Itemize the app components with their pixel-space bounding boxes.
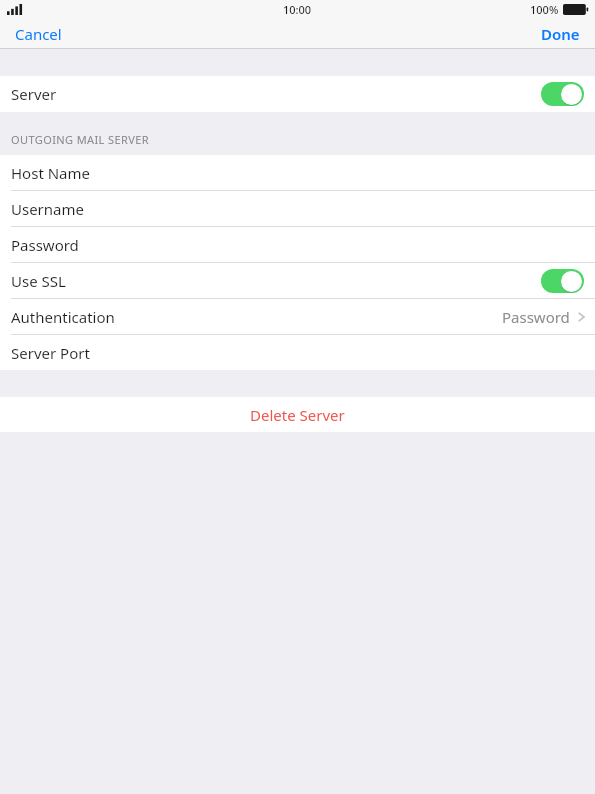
button[interactable]: Password	[0, 227, 595, 262]
staticText: 100%	[530, 2, 559, 17]
button[interactable]: Cancel	[0, 20, 74, 48]
staticText: Password	[502, 307, 570, 327]
button[interactable]: Host Name	[0, 155, 595, 190]
button[interactable]: Delete Server	[0, 397, 595, 432]
staticText: Authentication	[11, 307, 115, 327]
button[interactable]: Done	[529, 20, 595, 48]
button[interactable]: Username	[0, 191, 595, 226]
button[interactable]: Use SSL	[0, 263, 595, 298]
staticText: Use SSL	[11, 271, 66, 291]
staticText: Server Port	[11, 343, 90, 363]
staticText: Done	[541, 24, 580, 44]
staticText: Host Name	[11, 163, 90, 183]
staticText: Server	[11, 84, 57, 104]
staticText: Delete Server	[250, 405, 345, 425]
button[interactable]: Authentication	[0, 299, 595, 334]
staticText: Password	[11, 235, 79, 255]
button[interactable]: Server	[0, 76, 595, 112]
staticText: Username	[11, 199, 84, 219]
staticText: Cancel	[15, 24, 62, 44]
staticText: 10:00	[283, 2, 312, 17]
button[interactable]: Server Port	[0, 335, 595, 370]
other: Server toggle, on	[541, 82, 584, 106]
staticText: OUTGOING MAIL SERVER	[11, 132, 149, 146]
other: Use SSL toggle, on	[541, 269, 584, 293]
